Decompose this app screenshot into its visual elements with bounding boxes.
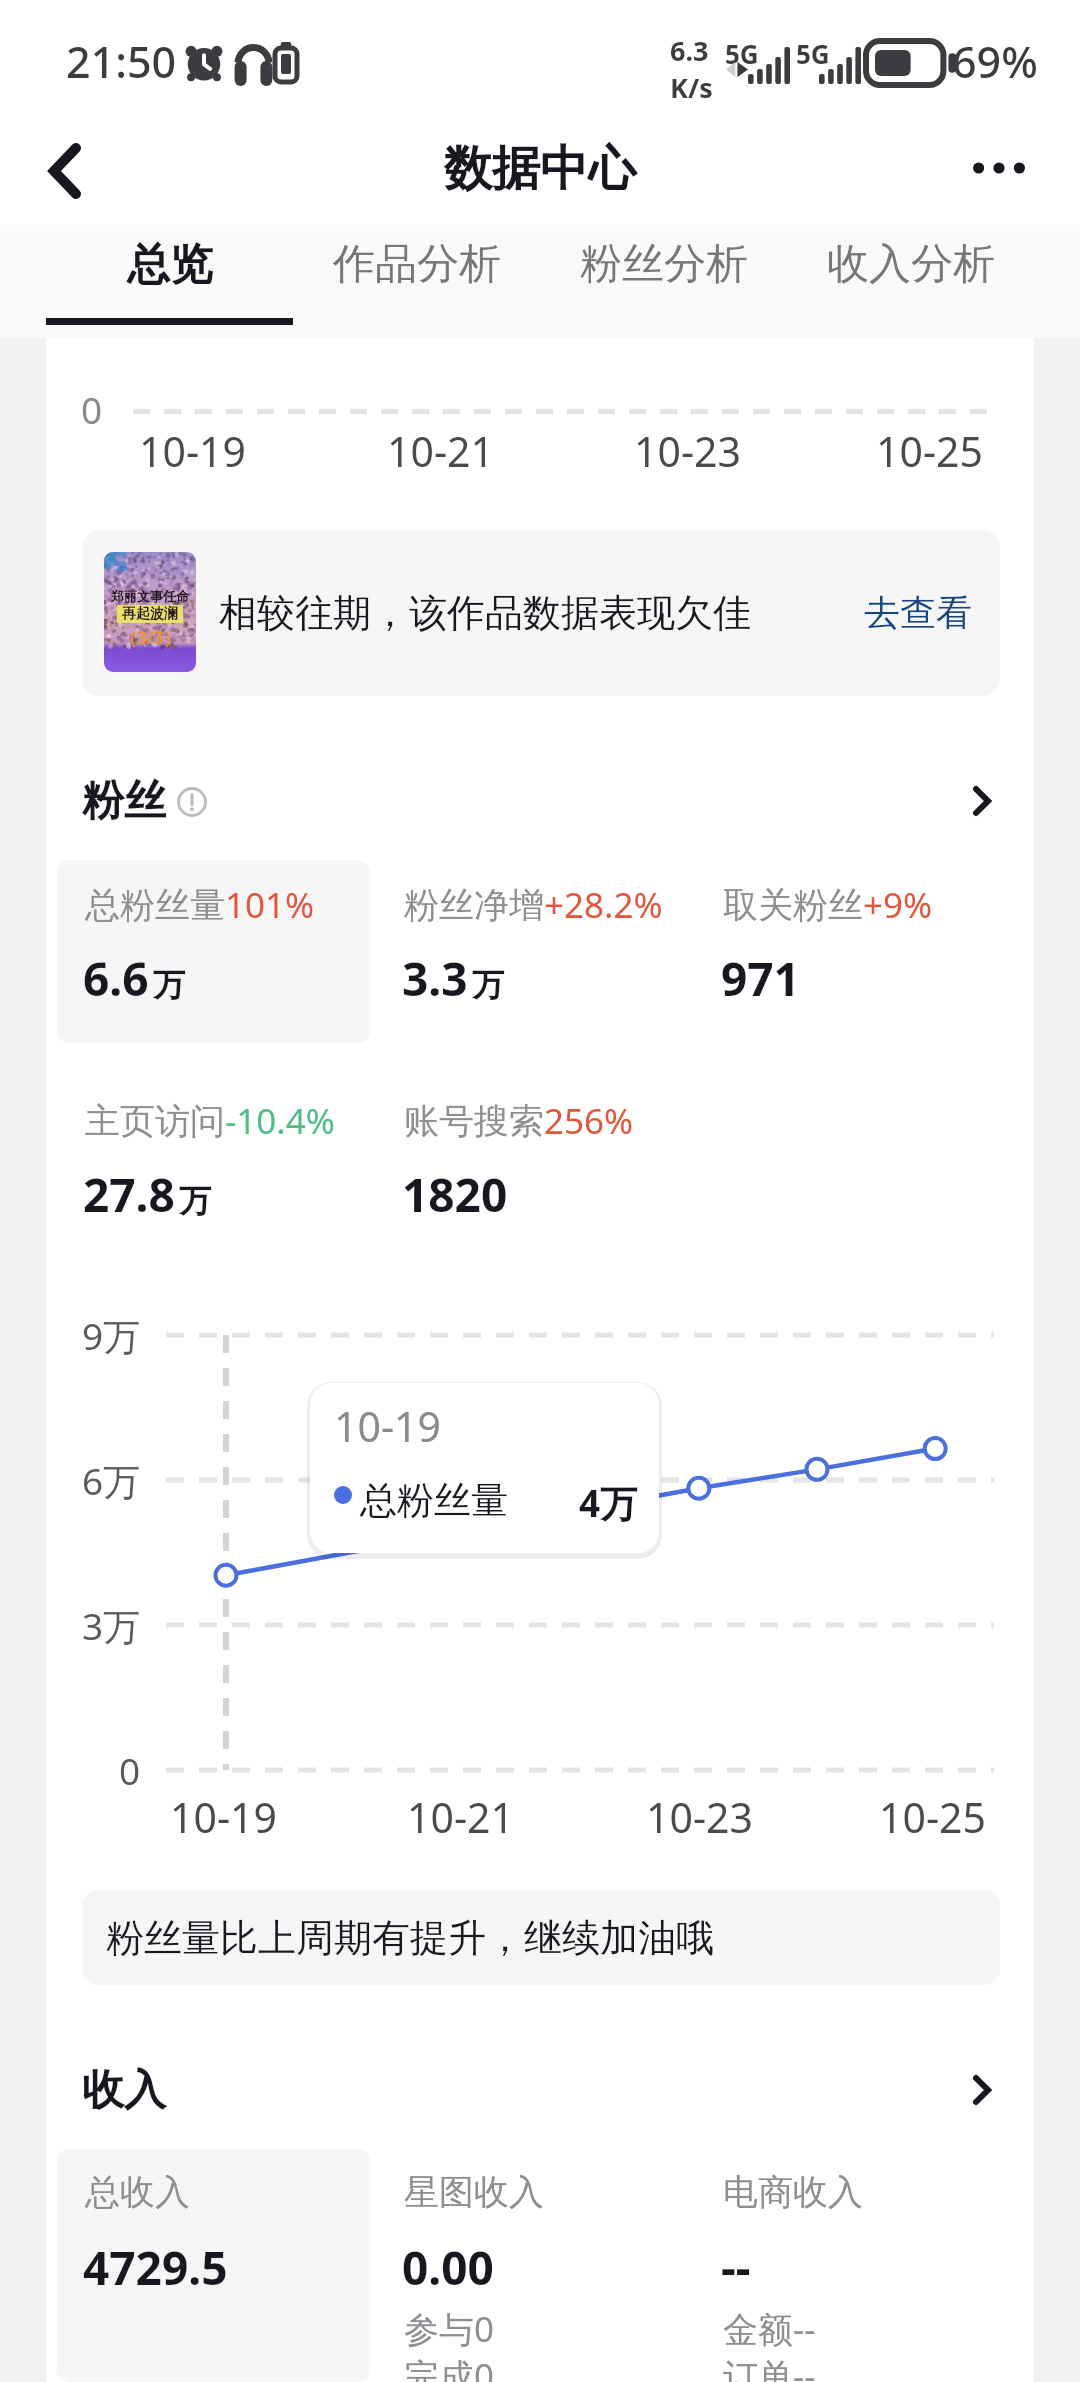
staticText: 9万: [82, 1310, 141, 1361]
staticText: 10-19: [334, 1398, 442, 1454]
staticText: 收入: [82, 2064, 166, 2117]
staticText: 账号搜索: [404, 1099, 544, 1143]
staticText: 69%: [952, 32, 1038, 91]
staticText: 10-19: [170, 1789, 278, 1845]
button[interactable]: 作品分析: [293, 225, 540, 338]
staticText: 10-25: [879, 1789, 987, 1845]
staticText: 6.6: [83, 947, 149, 1010]
staticText: （3/3）: [120, 626, 181, 649]
button[interactable]: 总览: [46, 225, 293, 338]
staticText: 4万: [579, 1477, 638, 1528]
staticText: 101%: [225, 881, 315, 929]
staticText: 总收入: [85, 2170, 190, 2214]
button[interactable]: 收入: [82, 2059, 991, 2121]
button[interactable]: More options: [952, 122, 1046, 214]
staticText: 0: [81, 384, 103, 434]
staticText: 收入分析: [827, 238, 995, 291]
staticText: 0: [119, 1745, 141, 1795]
staticText: 5G: [725, 36, 759, 71]
staticText: 总粉丝量: [360, 1477, 508, 1524]
staticText: K/s: [670, 69, 713, 106]
staticText: 3万: [82, 1600, 141, 1651]
staticText: +9%: [863, 881, 933, 929]
staticText: 相较往期，该作品数据表现欠佳: [219, 589, 751, 637]
staticText: 6.3: [670, 32, 709, 69]
staticText: 参与0: [404, 2305, 495, 2353]
button[interactable]: 取关粉丝: [695, 860, 1014, 1043]
staticText: 10-23: [646, 1789, 754, 1845]
staticText: 粉丝净增: [404, 883, 544, 927]
staticText: 主页访问: [85, 1099, 225, 1143]
button[interactable]: 总粉丝量: [57, 860, 370, 1043]
staticText: 电商收入: [723, 2170, 863, 2214]
staticText: 订单--: [723, 2352, 816, 2382]
staticText: 21:50: [66, 32, 177, 91]
staticText: 万: [179, 1181, 211, 1221]
staticText: 粉丝: [82, 775, 166, 828]
staticText: 10-21: [387, 423, 495, 479]
staticText: 作品分析: [333, 238, 501, 291]
staticText: -10.4%: [225, 1097, 335, 1145]
button[interactable]: 账号搜索: [376, 1076, 695, 1259]
staticText: 4729.5: [83, 2236, 228, 2299]
staticText: 粉丝分析: [580, 238, 748, 291]
staticText: 取关粉丝: [723, 883, 863, 927]
staticText: +28.2%: [544, 881, 663, 929]
staticText: 0.00: [402, 2236, 494, 2299]
staticText: 再起波澜: [122, 605, 178, 623]
staticText: 完成0: [404, 2352, 495, 2382]
staticText: 971: [721, 947, 800, 1010]
staticText: 数据中心: [444, 139, 636, 199]
staticText: 3.3: [402, 947, 468, 1010]
button[interactable]: 星图收入: [376, 2149, 695, 2382]
button[interactable]: 电商收入: [695, 2149, 1014, 2382]
button[interactable]: 去查看: [862, 580, 974, 644]
staticText: 10-25: [876, 423, 984, 479]
staticText: 万: [153, 965, 185, 1005]
staticText: 万: [472, 965, 504, 1005]
staticText: 5G: [796, 36, 830, 71]
staticText: 金额--: [723, 2305, 816, 2353]
button[interactable]: Back: [20, 125, 110, 217]
button[interactable]: 粉丝分析: [540, 225, 787, 338]
staticText: 总览: [127, 238, 213, 292]
button[interactable]: 收入分析: [787, 225, 1034, 338]
staticText: 27.8: [83, 1163, 175, 1226]
staticText: 1820: [402, 1163, 508, 1226]
staticText: 星图收入: [404, 2170, 544, 2214]
staticText: 去查看: [864, 590, 972, 635]
staticText: 10-21: [407, 1789, 515, 1845]
staticText: --: [721, 2236, 751, 2299]
staticText: 256%: [544, 1097, 634, 1145]
staticText: 总粉丝量: [85, 883, 225, 927]
button[interactable]: 郑丽文事任命: [82, 530, 1000, 696]
button[interactable]: 总收入: [57, 2149, 370, 2382]
staticText: 10-23: [634, 423, 742, 479]
button[interactable]: 粉丝净增: [376, 860, 695, 1043]
button[interactable]: 粉丝: [82, 770, 991, 832]
staticText: 10-19: [139, 423, 247, 479]
staticText: 6万: [82, 1455, 141, 1506]
staticText: 粉丝量比上周期有提升，继续加油哦: [106, 1914, 714, 1962]
staticText: 郑丽文事任命: [111, 588, 189, 604]
button[interactable]: 主页访问: [57, 1076, 376, 1259]
